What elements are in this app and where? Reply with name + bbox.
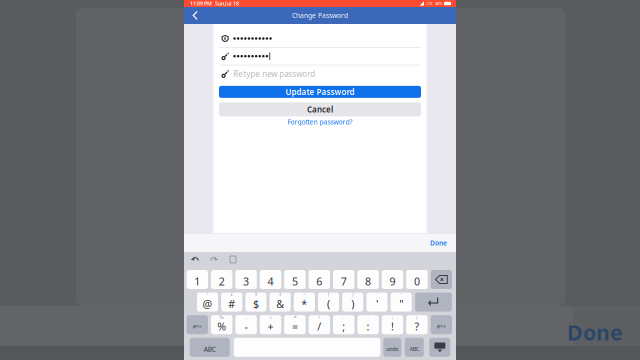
staticText: Forgotten password?	[287, 117, 352, 126]
button[interactable]	[406, 270, 428, 289]
button[interactable]	[309, 270, 330, 289]
button[interactable]: ‰	[211, 315, 232, 334]
staticText	[319, 269, 320, 274]
staticText	[294, 269, 295, 274]
staticText	[307, 337, 308, 342]
staticText: &	[276, 297, 284, 311]
staticText: "	[399, 297, 403, 311]
staticText: ‰	[219, 314, 224, 319]
staticText: £	[231, 292, 233, 297]
button[interactable]: •	[294, 293, 315, 312]
button[interactable]: Forgotten password?	[219, 117, 421, 127]
staticText: °	[207, 292, 209, 297]
button[interactable]: Delete	[431, 270, 452, 289]
staticText: •	[303, 292, 305, 297]
staticText: Retype new password	[233, 69, 315, 79]
staticText: =	[292, 319, 298, 334]
button[interactable]	[357, 270, 379, 289]
staticText: Done	[430, 239, 447, 247]
button[interactable]	[211, 270, 232, 289]
button[interactable]: Redo	[209, 254, 219, 264]
button[interactable]: Update Password	[219, 86, 421, 98]
button[interactable]	[190, 338, 230, 357]
staticText: ?	[414, 319, 419, 334]
staticText: Done	[567, 318, 623, 346]
staticText: ¿	[416, 314, 418, 319]
button[interactable]: ≠	[284, 315, 306, 334]
button[interactable]	[431, 315, 452, 334]
staticText	[197, 269, 198, 274]
staticText: Change Password	[292, 11, 348, 20]
button[interactable]: Paste	[228, 254, 238, 264]
staticText	[368, 269, 369, 274]
button[interactable]: ¡	[382, 315, 403, 334]
button[interactable]: ¥	[245, 293, 266, 312]
staticText: %	[217, 319, 226, 334]
button[interactable]	[405, 338, 424, 357]
button[interactable]	[383, 338, 401, 357]
staticText: ;	[368, 314, 369, 319]
button[interactable]: Return	[415, 293, 452, 312]
button[interactable]: ±	[260, 315, 281, 334]
staticText: 11:09 PM	[190, 0, 212, 7]
button[interactable]: [	[318, 293, 339, 312]
button[interactable]: ]	[342, 293, 363, 312]
button[interactable]: Done	[562, 316, 628, 348]
button[interactable]: Cancel	[219, 102, 421, 116]
button[interactable]	[235, 270, 257, 289]
staticText: 7	[341, 274, 347, 288]
staticText: “	[401, 292, 402, 297]
button[interactable]: ¿	[406, 315, 428, 334]
staticText: #+=	[193, 323, 202, 330]
staticText: (	[327, 297, 330, 311]
staticText: 9	[389, 274, 395, 288]
button[interactable]	[333, 270, 354, 289]
staticText: 2	[219, 274, 225, 288]
staticText: _	[245, 314, 247, 319]
button[interactable]	[187, 315, 208, 334]
staticText: [	[328, 292, 329, 297]
button[interactable]	[260, 270, 281, 289]
staticText: #+=	[437, 323, 446, 330]
button[interactable]: \	[309, 315, 330, 334]
staticText: $	[253, 297, 259, 311]
staticText: Cancel	[307, 104, 333, 115]
staticText	[416, 269, 417, 274]
button[interactable]: Hide keyboard	[429, 338, 450, 357]
button[interactable]: °	[197, 293, 218, 312]
button[interactable]	[187, 270, 208, 289]
button[interactable]: “	[391, 293, 412, 312]
staticText: )	[351, 297, 354, 311]
staticText: 48%	[435, 1, 442, 6]
button[interactable]: §	[270, 293, 291, 312]
staticText: 3	[243, 274, 249, 288]
staticText: ;	[342, 319, 345, 334]
button[interactable]: Done	[427, 237, 450, 249]
button[interactable]: ‘	[366, 293, 387, 312]
staticText	[343, 269, 344, 274]
staticText: -	[245, 319, 248, 334]
staticText: 6	[316, 274, 322, 288]
button[interactable]: …	[333, 315, 354, 334]
staticText: undo	[386, 345, 398, 353]
button[interactable]: ;	[357, 315, 379, 334]
button[interactable]: Back	[184, 7, 206, 24]
staticText	[270, 269, 271, 274]
staticText	[246, 269, 247, 274]
button[interactable]	[382, 270, 403, 289]
staticText: ]	[352, 292, 353, 297]
staticText: LTE	[426, 1, 432, 6]
button[interactable]: £	[221, 293, 242, 312]
button[interactable]: Undo	[190, 254, 200, 264]
staticText: !	[391, 319, 394, 334]
staticText	[221, 269, 222, 274]
staticText: /	[317, 319, 321, 334]
staticText: ±	[269, 314, 271, 319]
staticText: 0	[414, 274, 420, 288]
button[interactable]	[284, 270, 306, 289]
staticText	[392, 269, 393, 274]
button[interactable]: _	[235, 315, 257, 334]
